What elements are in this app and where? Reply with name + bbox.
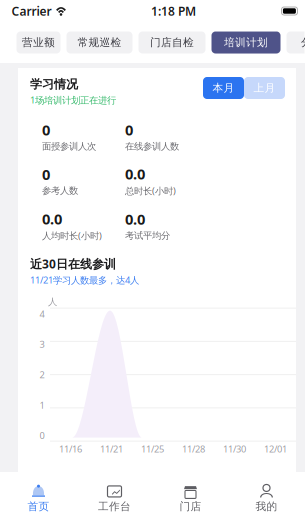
button[interactable]: 营业额 <box>16 31 60 53</box>
staticText: 0 <box>42 164 50 184</box>
button[interactable]: 分 <box>286 31 305 53</box>
staticText: 上月 <box>253 81 275 94</box>
staticText: 11/25 <box>141 443 164 455</box>
staticText: 0.0 <box>125 164 145 184</box>
staticText: 分 <box>301 36 305 49</box>
staticText: 门店 <box>179 500 201 513</box>
button[interactable]: 门店 <box>152 472 228 525</box>
staticText: 参考人数 <box>42 185 78 196</box>
staticText: 11/21 <box>100 443 123 455</box>
staticText: 1场培训计划正在进行 <box>30 94 116 106</box>
staticText: 12/01 <box>264 443 287 455</box>
staticText: 0 <box>42 120 50 140</box>
button[interactable]: 上月 <box>244 77 285 99</box>
staticText: 面授参训人次 <box>42 141 96 152</box>
staticText: 1 <box>39 399 44 411</box>
staticText: 11/30 <box>223 443 246 455</box>
button[interactable]: 本月 <box>203 77 244 99</box>
staticText: 常规巡检 <box>77 36 121 49</box>
staticText: 我的 <box>255 500 277 513</box>
staticText: 11/28 <box>182 443 205 455</box>
staticText: 总时长(小时) <box>125 185 176 197</box>
staticText: 本月 <box>212 81 234 94</box>
button[interactable]: 门店自检 <box>138 31 205 53</box>
staticText: 工作台 <box>98 500 131 513</box>
staticText: 营业额 <box>22 36 55 49</box>
staticText: 0.0 <box>125 209 145 229</box>
staticText: 门店自检 <box>150 36 194 49</box>
staticText: 学习情况 <box>30 77 78 92</box>
staticText: 首页 <box>27 500 49 513</box>
staticText: 1:18 PM <box>151 3 196 19</box>
button[interactable]: 常规巡检 <box>66 31 132 53</box>
staticText: 2 <box>39 368 44 381</box>
button[interactable]: 首页 <box>0 472 76 525</box>
button[interactable]: 工作台 <box>76 472 152 525</box>
staticText: Carrier <box>11 3 51 19</box>
button[interactable]: 我的 <box>228 472 304 525</box>
staticText: 人 <box>48 296 57 308</box>
button[interactable]: 培训计划 <box>211 31 280 53</box>
staticText: 近30日在线参训 <box>30 256 116 272</box>
staticText: 0 <box>125 120 133 140</box>
staticText: 11/21学习人数最多，达4人 <box>30 274 139 286</box>
staticText: 人均时长(小时) <box>42 229 102 242</box>
staticText: 考试平均分 <box>125 230 170 241</box>
staticText: 4 <box>39 308 44 320</box>
staticText: 培训计划 <box>224 36 268 49</box>
staticText: 在线参训人数 <box>125 141 179 152</box>
staticText: 3 <box>39 338 44 350</box>
staticText: 0 <box>39 429 44 442</box>
staticText: 11/16 <box>59 443 82 455</box>
staticText: 0.0 <box>42 209 62 228</box>
